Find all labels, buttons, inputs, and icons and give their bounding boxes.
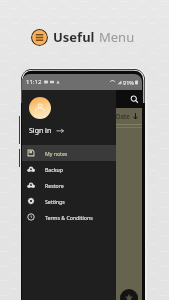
button[interactable]: Restore [22,177,116,193]
button[interactable]: Backup [22,161,116,177]
staticText: Backup [45,166,63,173]
staticText: Sign in [29,126,52,136]
staticText: 11:12 [26,78,42,86]
button[interactable]: Terms & Conditions [22,209,116,225]
staticText: Menu [99,28,135,46]
staticText: Date [116,112,130,120]
button[interactable]: Sign in [29,125,64,136]
staticText: Useful [53,28,95,46]
staticText: Settings [45,198,65,205]
button[interactable]: My notes [22,145,116,161]
button[interactable]: Settings [22,193,116,209]
staticText: 91% [123,79,134,86]
staticText: Restore [45,182,64,189]
button[interactable]: Search [130,95,139,104]
staticText: Terms & Conditions [45,214,93,221]
staticText: My notes [45,150,68,157]
button[interactable]: New note [120,289,138,300]
